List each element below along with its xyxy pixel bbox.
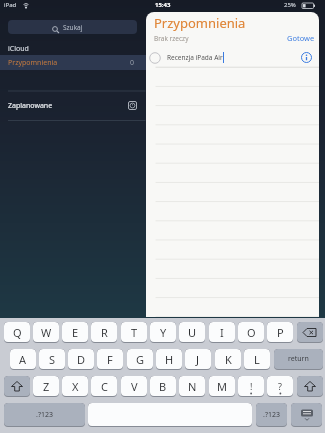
button[interactable]: Gotowe bbox=[287, 33, 315, 43]
staticText: P bbox=[277, 325, 284, 340]
button[interactable]: Zaplanowane bbox=[0, 91, 146, 120]
button[interactable] bbox=[88, 403, 252, 427]
staticText: Przypomnienia bbox=[154, 14, 246, 32]
button[interactable]: W bbox=[33, 322, 59, 343]
staticText: iPad bbox=[4, 1, 17, 9]
staticText: Z bbox=[43, 379, 50, 394]
button[interactable]: C bbox=[91, 376, 117, 397]
staticText: Szukaj bbox=[63, 23, 83, 32]
staticText: U bbox=[188, 325, 197, 340]
staticText: A bbox=[19, 352, 27, 367]
staticText: Brak rzeczy bbox=[154, 34, 189, 43]
staticText: return bbox=[288, 354, 309, 364]
staticText: I bbox=[220, 325, 224, 340]
staticText: 0 bbox=[130, 58, 135, 68]
staticText: J bbox=[196, 352, 200, 367]
button[interactable] bbox=[297, 322, 323, 343]
staticText: Y bbox=[160, 325, 167, 340]
staticText: Gotowe bbox=[287, 33, 315, 43]
staticText: T bbox=[131, 325, 138, 340]
button[interactable]: H bbox=[156, 349, 182, 370]
staticText: Zaplanowane bbox=[8, 101, 53, 111]
button[interactable]: U bbox=[179, 322, 205, 343]
button[interactable]: .?123 bbox=[4, 403, 85, 427]
button[interactable]: S bbox=[39, 349, 65, 370]
button[interactable]: D bbox=[68, 349, 94, 370]
staticText: M bbox=[217, 379, 227, 394]
button[interactable]: Q bbox=[4, 322, 30, 343]
button[interactable]: A bbox=[10, 349, 36, 370]
staticText: ! bbox=[250, 380, 253, 392]
staticText: B bbox=[159, 379, 167, 394]
staticText: 25% bbox=[284, 1, 296, 9]
staticText: R bbox=[101, 325, 108, 340]
button[interactable]: G bbox=[127, 349, 153, 370]
button[interactable]: .?123 bbox=[256, 403, 287, 427]
staticText: D bbox=[77, 352, 86, 367]
staticText: O bbox=[247, 325, 256, 340]
button[interactable]: Przypomnienia bbox=[0, 55, 146, 70]
button[interactable]: V bbox=[121, 376, 147, 397]
button[interactable]: F bbox=[97, 349, 123, 370]
staticText: Recenzja iPada Air bbox=[167, 53, 223, 62]
staticText: X bbox=[72, 379, 79, 394]
staticText: 15:43 bbox=[155, 1, 171, 9]
button[interactable]: E bbox=[62, 322, 88, 343]
staticText: G bbox=[136, 352, 145, 367]
button[interactable]: ? bbox=[267, 376, 293, 397]
button[interactable]: ! bbox=[238, 376, 264, 397]
staticText: Q bbox=[13, 325, 22, 340]
button[interactable]: N bbox=[179, 376, 205, 397]
button[interactable]: Y bbox=[150, 322, 176, 343]
button[interactable]: M bbox=[209, 376, 235, 397]
button[interactable]: Recenzja iPada Air bbox=[146, 51, 318, 65]
staticText: V bbox=[131, 379, 138, 394]
button[interactable]: O bbox=[238, 322, 264, 343]
staticText: W bbox=[41, 325, 52, 340]
button[interactable]: R bbox=[91, 322, 117, 343]
staticText: ? bbox=[278, 380, 282, 392]
button[interactable]: K bbox=[215, 349, 241, 370]
button[interactable]: J bbox=[185, 349, 211, 370]
staticText: S bbox=[49, 352, 56, 367]
button[interactable]: T bbox=[121, 322, 147, 343]
staticText: .?123 bbox=[36, 410, 53, 420]
button[interactable]: B bbox=[150, 376, 176, 397]
button[interactable]: L bbox=[244, 349, 270, 370]
button[interactable] bbox=[4, 376, 30, 397]
staticText: C bbox=[101, 379, 108, 394]
staticText: N bbox=[188, 379, 197, 394]
button[interactable]: X bbox=[62, 376, 88, 397]
button[interactable]: return bbox=[274, 349, 323, 370]
staticText: iCloud bbox=[8, 44, 29, 54]
button[interactable]: Szukaj bbox=[8, 20, 137, 34]
staticText: E bbox=[72, 325, 79, 340]
button[interactable]: I bbox=[209, 322, 235, 343]
staticText: Przypomnienia bbox=[8, 58, 58, 68]
button[interactable] bbox=[297, 376, 323, 397]
staticText: F bbox=[107, 352, 113, 367]
staticText: .?123 bbox=[263, 410, 280, 420]
staticText: H bbox=[165, 352, 174, 367]
button[interactable]: P bbox=[267, 322, 293, 343]
button[interactable]: Z bbox=[33, 376, 59, 397]
button[interactable] bbox=[291, 403, 322, 427]
staticText: K bbox=[225, 352, 232, 367]
staticText: L bbox=[254, 352, 260, 367]
